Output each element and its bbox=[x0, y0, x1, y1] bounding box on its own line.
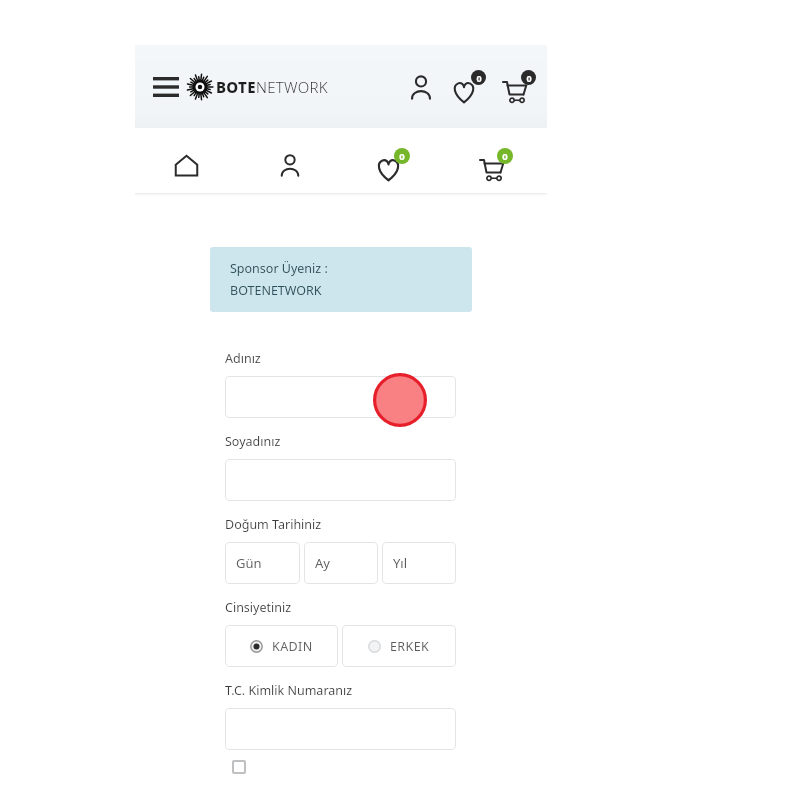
staticText: Ay bbox=[315, 554, 330, 572]
button[interactable]: Text input bbox=[225, 708, 456, 750]
staticText: Doğum Tarihiniz bbox=[225, 516, 322, 533]
button[interactable]: Text input bbox=[225, 459, 456, 501]
button[interactable]: Favorites, 0 items bbox=[341, 134, 444, 196]
staticText: Adınız bbox=[225, 350, 261, 367]
button[interactable]: Yıl bbox=[382, 542, 456, 584]
button[interactable]: Cart, 0 items bbox=[444, 134, 547, 196]
button[interactable]: Text input bbox=[225, 376, 456, 418]
staticText: Sponsor Üyeniz : bbox=[230, 260, 328, 277]
staticText: T.C. Kimlik Numaranız bbox=[225, 682, 353, 699]
staticText: BOTENETWORK bbox=[230, 282, 322, 299]
staticText: 0 bbox=[399, 150, 405, 163]
button[interactable]: Cart, 0 items bbox=[495, 63, 543, 111]
button[interactable]: Profile bbox=[238, 134, 341, 196]
button[interactable]: Gün bbox=[225, 542, 300, 584]
staticText: Cinsiyetiniz bbox=[225, 599, 292, 616]
staticText: Gün bbox=[236, 554, 262, 572]
staticText: ERKEK bbox=[390, 638, 430, 655]
staticText: 0 bbox=[502, 150, 508, 163]
staticText: Soyadınız bbox=[225, 433, 281, 450]
staticText: 0 bbox=[476, 72, 482, 84]
button[interactable]: Menu bbox=[146, 67, 186, 107]
button[interactable]: Account bbox=[399, 65, 443, 109]
button[interactable]: Sponsor Üyeniz : bbox=[210, 247, 472, 312]
button[interactable]: Favorites, 0 items bbox=[445, 63, 493, 111]
staticText: NETWORK bbox=[256, 77, 328, 97]
button[interactable]: Ay bbox=[304, 542, 378, 584]
staticText: Yıl bbox=[393, 554, 408, 572]
button[interactable]: Home bbox=[135, 134, 238, 196]
staticText: BOTE bbox=[216, 77, 256, 97]
button[interactable]: Accept terms bbox=[232, 760, 246, 774]
button[interactable]: BOTE NETWORK home bbox=[187, 74, 328, 100]
staticText: KADIN bbox=[272, 638, 313, 655]
button[interactable]: ERKEK bbox=[342, 625, 456, 667]
button[interactable]: KADIN bbox=[225, 625, 338, 667]
staticText: 0 bbox=[526, 72, 532, 84]
